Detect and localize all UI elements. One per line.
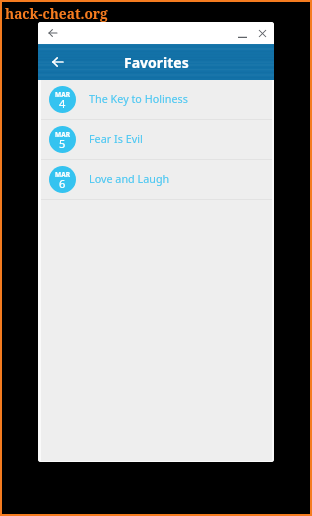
button[interactable]: Back: [44, 24, 62, 42]
button[interactable]: MAR: [41, 160, 272, 200]
staticText: Favorites: [124, 53, 189, 72]
button[interactable]: Close: [255, 26, 269, 40]
staticText: MAR: [55, 90, 70, 99]
button[interactable]: MAR: [41, 120, 272, 160]
button[interactable]: Navigate up: [44, 48, 72, 76]
staticText: 4: [59, 96, 66, 111]
staticText: Love and Laugh: [89, 171, 170, 186]
staticText: 5: [59, 136, 66, 151]
button[interactable]: Minimize: [235, 26, 249, 40]
staticText: MAR: [55, 130, 70, 139]
staticText: MAR: [55, 170, 70, 179]
staticText: The Key to Holiness: [89, 91, 188, 106]
staticText: Fear Is Evil: [89, 131, 143, 146]
staticText: hack-cheat.org: [5, 4, 108, 23]
staticText: 6: [59, 176, 66, 191]
button[interactable]: MAR: [41, 80, 272, 120]
